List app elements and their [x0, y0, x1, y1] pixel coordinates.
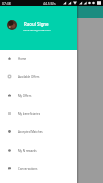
staticText: Raoul Signe	[24, 21, 49, 27]
staticText: My N rewards	[18, 149, 37, 153]
button[interactable]: My Offers	[0, 87, 77, 105]
staticText: raoul.signe@gmail.com	[23, 28, 51, 31]
staticText: My Offers	[18, 94, 32, 98]
button[interactable]: Home	[0, 50, 77, 68]
staticText: My beneficiaries	[18, 112, 41, 116]
staticText: 07:38	[2, 1, 11, 6]
staticText: Conversations	[18, 167, 38, 171]
button[interactable]: My beneficiaries	[0, 105, 77, 123]
button[interactable]: My N rewards	[0, 142, 77, 160]
staticText: Accepted Matches	[18, 130, 43, 134]
staticText: Available Offers	[18, 75, 40, 79]
button[interactable]: Conversations	[0, 160, 77, 178]
staticText: Home	[18, 57, 27, 61]
button[interactable]: Available Offers	[0, 68, 77, 86]
button[interactable]: Accepted Matches	[0, 123, 77, 141]
staticText: 44.5 B/s	[43, 1, 56, 6]
